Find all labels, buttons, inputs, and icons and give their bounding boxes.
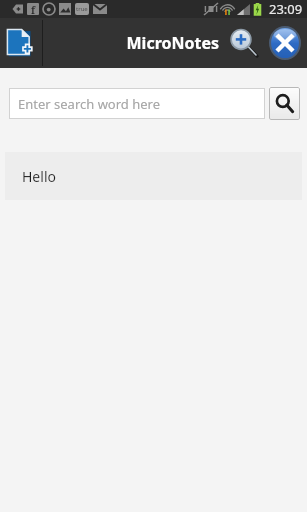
button[interactable]: Close bbox=[263, 18, 307, 68]
staticText: Enter search word here bbox=[18, 95, 161, 113]
button[interactable]: Search notes bbox=[225, 18, 263, 68]
button[interactable]: Hello bbox=[5, 152, 302, 200]
staticText: true bbox=[76, 5, 88, 13]
staticText: 23:09 bbox=[269, 0, 303, 18]
button[interactable]: New note bbox=[0, 18, 42, 68]
staticText: Hello bbox=[22, 167, 56, 186]
button[interactable]: Enter search word here bbox=[9, 88, 265, 119]
staticText: MicroNotes bbox=[126, 32, 219, 54]
staticText: f bbox=[31, 3, 36, 15]
button[interactable]: Search bbox=[269, 87, 300, 120]
